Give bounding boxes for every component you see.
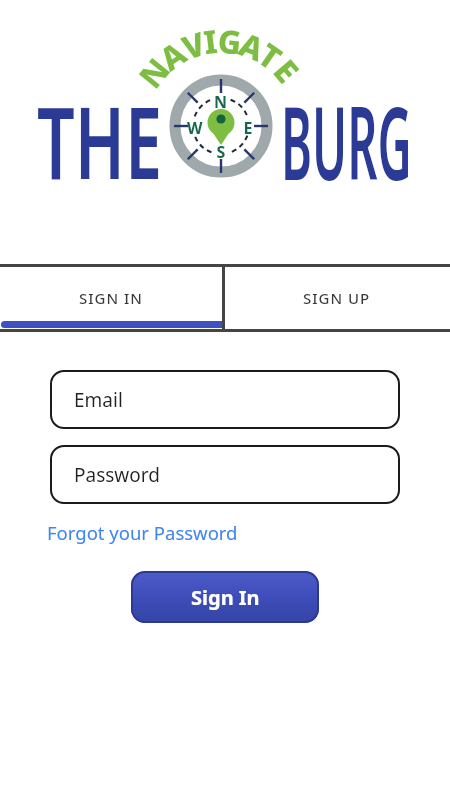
button[interactable]: Sign In [131,571,319,623]
button[interactable]: Forgot your Password [47,520,238,545]
staticText: Password [74,462,160,488]
button[interactable]: SIGN IN [0,267,222,328]
button[interactable]: Email [50,370,400,429]
staticText: Sign In [191,584,260,611]
button[interactable]: Password [50,445,400,504]
staticText: SIGN IN [79,288,143,308]
staticText: Email [74,387,123,413]
button[interactable]: SIGN UP [224,267,450,328]
staticText: Forgot your Password [47,520,238,545]
staticText: SIGN UP [303,288,371,308]
